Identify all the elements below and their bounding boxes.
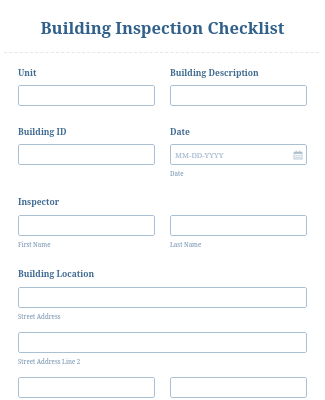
staticText: Last Name: [170, 240, 202, 248]
button[interactable]: Unit: [18, 85, 155, 106]
staticText: Street Address Line 2: [18, 357, 81, 365]
button[interactable]: State: [170, 377, 307, 398]
button[interactable]: Street Address Line 2: [18, 332, 307, 353]
button[interactable]: Building ID: [18, 144, 155, 165]
button[interactable]: Last Name: [170, 215, 307, 236]
staticText: Inspector: [18, 196, 60, 208]
staticText: Street Address: [18, 312, 61, 320]
button[interactable]: Date: [170, 144, 307, 165]
staticText: Building Inspection Checklist: [14, 16, 311, 38]
staticText: Building Location: [18, 268, 95, 280]
staticText: Date: [170, 126, 190, 138]
button[interactable]: City: [18, 377, 155, 398]
staticText: Building ID: [18, 126, 67, 138]
button[interactable]: Building Description: [170, 85, 307, 106]
staticText: Unit: [18, 67, 37, 79]
button[interactable]: Street Address: [18, 287, 307, 308]
button[interactable]: First Name: [18, 215, 155, 236]
staticText: Building Description: [170, 67, 259, 79]
staticText: MM-DD-YYYY: [175, 150, 294, 160]
staticText: First Name: [18, 240, 51, 248]
staticText: Date: [170, 169, 184, 177]
